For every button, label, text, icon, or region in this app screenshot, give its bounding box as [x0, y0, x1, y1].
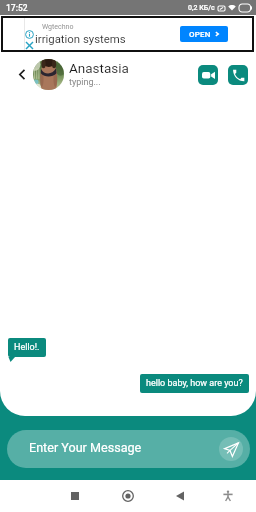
button[interactable]: hello baby, how are you?	[140, 374, 249, 393]
staticText: OPEN	[189, 30, 211, 39]
staticText: hello baby, how are you?	[146, 378, 243, 389]
button[interactable]: Send	[219, 437, 243, 461]
button[interactable]: OPEN	[180, 26, 228, 42]
button[interactable]: Back	[168, 484, 192, 508]
button[interactable]: Close ad	[25, 41, 34, 50]
staticText: Wgtechno	[42, 23, 74, 31]
staticText: Enter Your Message	[29, 440, 142, 455]
button[interactable]: Enter Your Message	[7, 430, 250, 468]
button[interactable]: Hello!.	[8, 338, 46, 357]
button[interactable]: Call	[228, 65, 248, 85]
button[interactable]: Home	[116, 484, 140, 508]
button[interactable]: Back	[10, 62, 34, 86]
staticText: irrigation systems	[35, 32, 126, 45]
staticText: Hello!.	[14, 342, 40, 353]
staticText: 17:52	[6, 3, 28, 13]
staticText: typing...	[69, 77, 101, 88]
button[interactable]: Video call	[198, 65, 218, 85]
staticText: 0,2 КБ/c	[188, 4, 215, 12]
staticText: Anastasia	[69, 60, 129, 76]
button[interactable]: Ad info	[25, 30, 34, 39]
button[interactable]: Recents	[63, 484, 87, 508]
button[interactable]: Accessibility	[216, 484, 240, 508]
